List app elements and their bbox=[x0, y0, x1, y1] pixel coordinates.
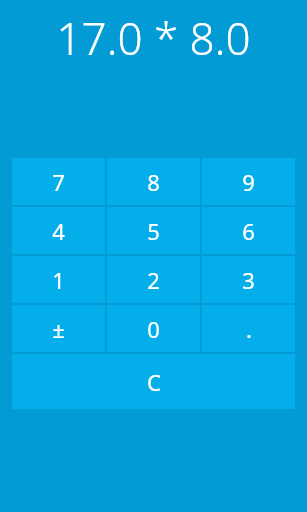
staticText: 0 bbox=[147, 314, 160, 344]
button[interactable]: 9 bbox=[202, 158, 295, 205]
button[interactable]: 2 bbox=[107, 256, 200, 303]
staticText: 9 bbox=[242, 167, 255, 197]
staticText: 2 bbox=[147, 265, 160, 295]
staticText: 6 bbox=[242, 216, 255, 246]
staticText: C bbox=[147, 367, 161, 397]
button[interactable]: 7 bbox=[12, 158, 105, 205]
button[interactable]: 1 bbox=[12, 256, 105, 303]
button[interactable]: 6 bbox=[202, 207, 295, 254]
button[interactable]: 3 bbox=[202, 256, 295, 303]
button[interactable]: . bbox=[202, 305, 295, 352]
button[interactable]: 4 bbox=[12, 207, 105, 254]
staticText: 17.0 * 8.0 bbox=[56, 8, 251, 68]
staticText: 4 bbox=[52, 216, 65, 246]
staticText: 5 bbox=[147, 216, 160, 246]
button[interactable]: 8 bbox=[107, 158, 200, 205]
button[interactable]: 5 bbox=[107, 207, 200, 254]
staticText: ± bbox=[52, 314, 65, 344]
button[interactable]: C bbox=[12, 354, 295, 409]
staticText: 1 bbox=[52, 265, 65, 295]
button[interactable]: 0 bbox=[107, 305, 200, 352]
staticText: 3 bbox=[242, 265, 255, 295]
staticText: 7 bbox=[52, 167, 65, 197]
staticText: . bbox=[246, 314, 252, 344]
button[interactable]: ± bbox=[12, 305, 105, 352]
staticText: 8 bbox=[147, 167, 160, 197]
